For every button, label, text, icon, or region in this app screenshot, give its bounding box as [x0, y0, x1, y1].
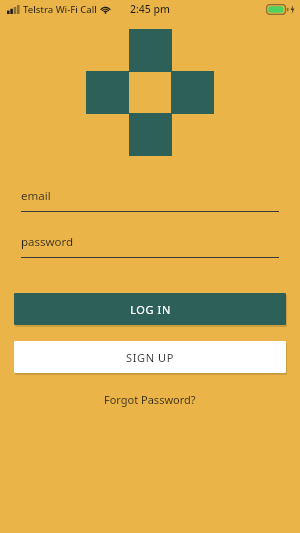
button[interactable]: SIGN UP	[14, 341, 286, 373]
staticText: Forgot Password?	[104, 392, 196, 407]
button[interactable]: Forgot Password?	[94, 388, 206, 411]
button[interactable]: password	[21, 234, 279, 258]
button[interactable]: LOG IN	[14, 293, 286, 325]
staticText: SIGN UP	[126, 350, 174, 365]
staticText: email	[21, 188, 51, 204]
staticText: 2:45 pm	[130, 2, 171, 16]
staticText: password	[21, 234, 74, 250]
staticText: LOG IN	[130, 302, 171, 317]
staticText: Telstra Wi-Fi Call	[23, 3, 97, 16]
button[interactable]: email	[21, 188, 279, 212]
